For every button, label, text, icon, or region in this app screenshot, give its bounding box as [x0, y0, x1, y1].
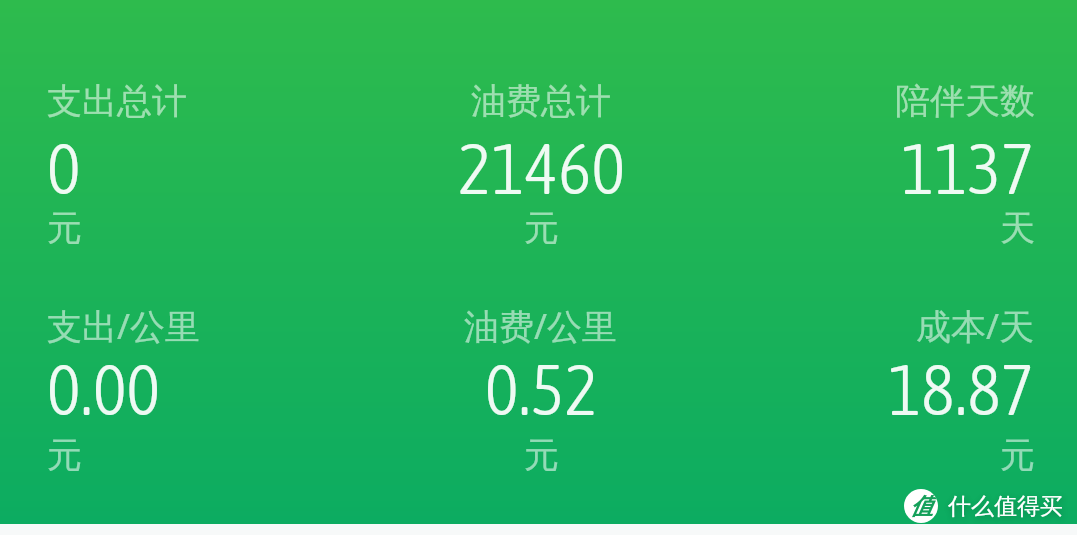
staticText: 元 [524, 433, 559, 477]
staticText: 什么值得买 [948, 492, 1063, 521]
staticText: 元 [47, 433, 82, 477]
staticText: 陪伴天数 [895, 79, 1035, 123]
staticText: 1137 [901, 128, 1035, 209]
staticText: 0 [47, 128, 81, 209]
staticText: 天 [1000, 206, 1035, 250]
staticText: 成本/天 [916, 302, 1035, 350]
staticText: 元 [524, 206, 559, 250]
staticText: 0.52 [485, 349, 598, 430]
staticText: 值 [910, 492, 933, 521]
staticText: 18.87 [888, 349, 1035, 430]
staticText: 油费总计 [471, 79, 611, 123]
staticText: 元 [47, 206, 82, 250]
staticText: 21460 [458, 128, 625, 209]
staticText: 支出总计 [47, 79, 187, 123]
staticText: 元 [1000, 433, 1035, 477]
staticText: 油费/公里 [464, 302, 618, 350]
staticText: 支出/公里 [47, 302, 201, 350]
staticText: 0.00 [47, 349, 160, 430]
